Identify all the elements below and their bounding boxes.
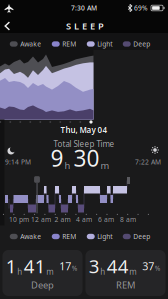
staticText: REM — [62, 40, 76, 48]
staticText: m — [129, 266, 136, 277]
staticText: 9:14 PM — [5, 158, 31, 166]
staticText: 69% — [134, 4, 148, 12]
button[interactable]: REM — [52, 40, 76, 48]
button[interactable]: Deep — [123, 40, 150, 48]
staticText: 30 — [73, 143, 99, 173]
staticText: 6 am — [98, 215, 114, 224]
staticText: 7:30 AM — [71, 4, 97, 12]
staticText: Total Sleep Time — [53, 139, 114, 149]
staticText: h — [17, 266, 22, 277]
staticText: % — [72, 264, 78, 273]
staticText: 12 am — [31, 215, 51, 224]
button[interactable]: Light — [87, 232, 112, 241]
staticText: Deep — [31, 279, 54, 291]
staticText: 3 — [89, 254, 100, 278]
staticText: Awake — [20, 40, 41, 48]
staticText: Light — [97, 232, 112, 241]
staticText: m — [46, 266, 53, 277]
staticText: h — [100, 266, 105, 277]
button[interactable]: Deep — [123, 232, 150, 241]
button[interactable]: Awake — [10, 40, 41, 48]
staticText: 10 pm — [9, 215, 29, 224]
staticText: 41 — [24, 254, 46, 278]
staticText: 17 — [59, 259, 71, 273]
staticText: 4 am — [76, 215, 92, 224]
staticText: Light — [97, 40, 112, 48]
button[interactable]: Select night — [0, 120, 93, 124]
button[interactable]: Back — [4, 21, 12, 30]
staticText: 37 — [142, 259, 154, 273]
staticText: Thu, May 04 — [60, 125, 107, 135]
staticText: Awake — [20, 232, 41, 241]
staticText: 1 — [6, 254, 17, 278]
staticText: h — [64, 159, 70, 172]
staticText: Deep — [133, 232, 150, 241]
staticText: 8 am — [120, 215, 136, 224]
staticText: 7:22 AM — [135, 158, 161, 166]
staticText: 44 — [107, 254, 129, 278]
button[interactable]: REM — [52, 232, 76, 241]
staticText: SLEEP — [66, 20, 104, 32]
button[interactable]: 3 — [85, 250, 165, 296]
staticText: 9 — [50, 143, 63, 173]
staticText: REM — [116, 279, 135, 291]
staticText: REM — [62, 232, 76, 241]
button[interactable]: 1 — [2, 250, 82, 296]
button[interactable]: Awake — [10, 232, 41, 241]
staticText: Deep — [133, 40, 150, 48]
staticText: m — [100, 159, 109, 172]
button[interactable]: Light — [87, 40, 112, 48]
staticText: % — [155, 264, 161, 273]
staticText: 2 am — [54, 215, 70, 224]
